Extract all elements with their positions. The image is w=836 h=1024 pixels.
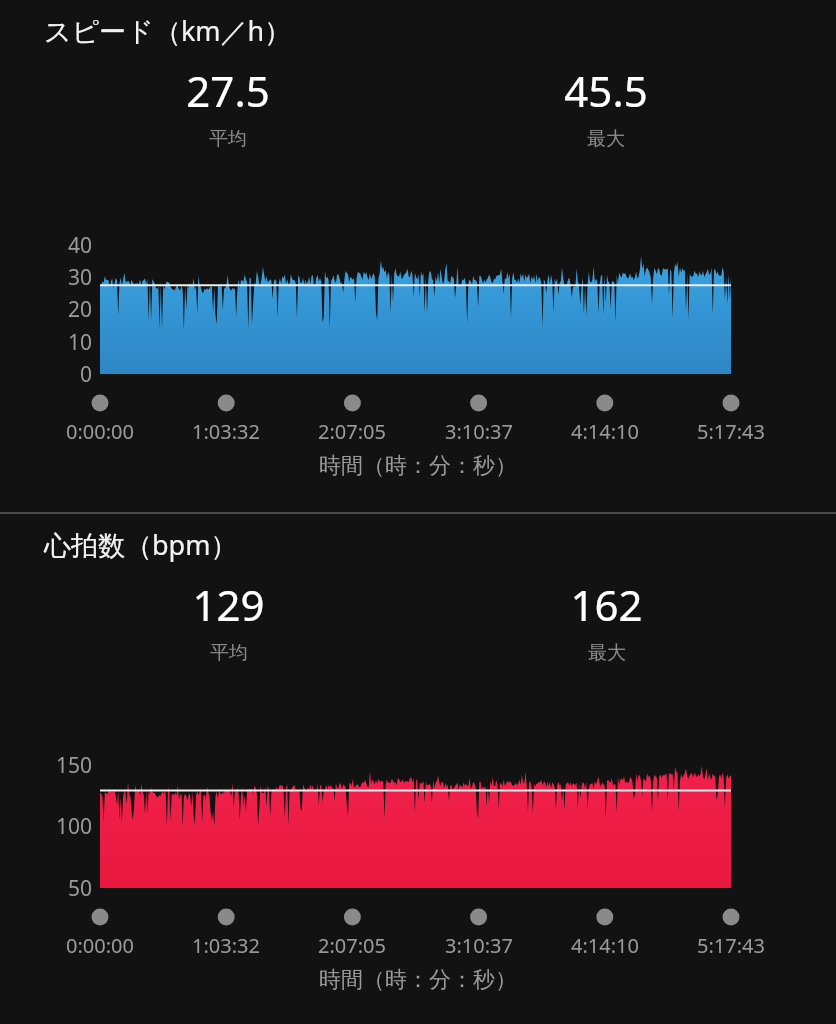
staticText: 5:17:43 xyxy=(697,932,765,959)
staticText: 45.5 xyxy=(564,62,648,119)
staticText: 4:14:10 xyxy=(571,932,639,959)
staticText: 150 xyxy=(55,751,92,780)
button[interactable]: 心拍数（bpm） xyxy=(0,514,836,1024)
staticText: 0:00:00 xyxy=(66,932,134,959)
button[interactable]: 129 xyxy=(108,576,348,665)
staticText: 129 xyxy=(192,576,265,633)
button[interactable]: 162 xyxy=(486,576,726,665)
staticText: 1:03:32 xyxy=(192,418,260,445)
staticText: 1:03:32 xyxy=(192,932,260,959)
staticText: 最大 xyxy=(587,127,625,151)
staticText: 心拍数（bpm） xyxy=(44,526,238,563)
button[interactable]: スピード（km／h） xyxy=(0,0,836,512)
staticText: 平均 xyxy=(209,127,247,151)
staticText: 100 xyxy=(55,812,92,841)
staticText: 40 xyxy=(67,231,92,260)
staticText: 162 xyxy=(570,576,643,633)
staticText: 0 xyxy=(79,360,92,389)
staticText: 5:17:43 xyxy=(697,418,765,445)
staticText: 10 xyxy=(67,328,92,357)
other: 心拍数（bpm） chart xyxy=(0,514,836,1024)
staticText: 時間（時：分：秒） xyxy=(319,452,517,480)
staticText: 30 xyxy=(67,263,92,292)
staticText: 2:07:05 xyxy=(318,418,386,445)
button[interactable]: 27.5 xyxy=(108,62,348,151)
staticText: 0:00:00 xyxy=(66,418,134,445)
staticText: 2:07:05 xyxy=(318,932,386,959)
staticText: 20 xyxy=(67,295,92,324)
staticText: 平均 xyxy=(210,641,248,665)
other: スピード（km／h） chart xyxy=(0,0,836,512)
staticText: 最大 xyxy=(588,641,626,665)
staticText: 50 xyxy=(67,874,92,903)
staticText: スピード（km／h） xyxy=(44,12,292,49)
staticText: 4:14:10 xyxy=(571,418,639,445)
button[interactable]: 45.5 xyxy=(486,62,726,151)
staticText: 3:10:37 xyxy=(445,932,513,959)
staticText: 27.5 xyxy=(186,62,270,119)
staticText: 3:10:37 xyxy=(445,418,513,445)
staticText: 時間（時：分：秒） xyxy=(319,966,517,994)
